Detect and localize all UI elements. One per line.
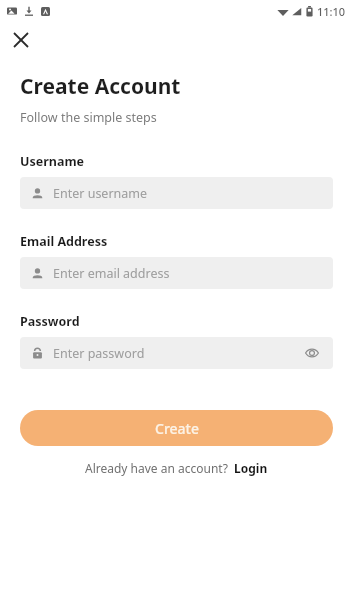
staticText: Username (20, 153, 85, 170)
button[interactable]: Enter password (20, 337, 333, 369)
staticText: Email Address (20, 233, 108, 250)
staticText: Create Account (20, 72, 181, 101)
staticText: Already have an account? (85, 460, 228, 476)
button[interactable]: Enter email address (20, 257, 333, 289)
staticText: Create (155, 419, 199, 438)
staticText: Enter email address (53, 265, 322, 282)
staticText: Follow the simple steps (20, 109, 157, 126)
button[interactable]: Show password (302, 343, 322, 363)
staticText: 11:10 (317, 4, 346, 19)
staticText: Login (234, 460, 268, 476)
button[interactable]: Enter username (20, 177, 333, 209)
staticText: Enter password (53, 345, 302, 362)
button[interactable]: Create (20, 410, 333, 446)
button[interactable]: Close (6, 25, 36, 55)
button[interactable]: Login (234, 460, 268, 476)
staticText: Password (20, 313, 80, 330)
staticText: Enter username (53, 185, 322, 202)
